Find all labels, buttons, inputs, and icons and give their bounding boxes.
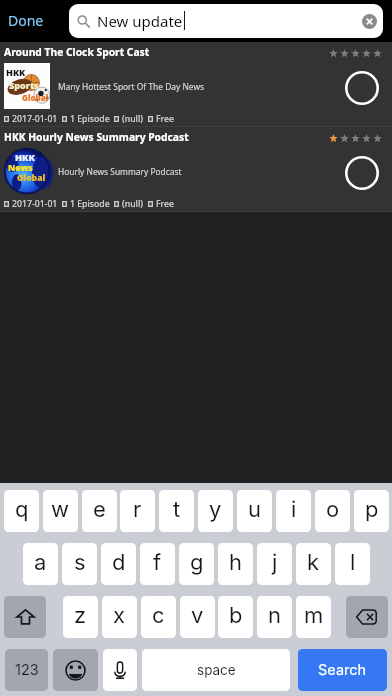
button[interactable]: j — [257, 543, 292, 585]
button[interactable]: h — [218, 543, 253, 585]
button[interactable]: p — [354, 490, 389, 532]
staticText: Hourly News Summary Podcast — [58, 166, 182, 177]
staticText: Around The Clock Sport Cast — [4, 45, 150, 59]
button[interactable]: b — [218, 596, 253, 638]
button[interactable]: x — [102, 596, 137, 638]
staticText: 1 Episode — [70, 198, 110, 210]
button[interactable]: d — [101, 543, 136, 585]
button[interactable]: q — [4, 490, 39, 532]
button[interactable]: z — [63, 596, 98, 638]
staticText: z — [74, 602, 87, 629]
staticText: space — [197, 662, 236, 678]
button[interactable]: u — [237, 490, 272, 532]
staticText: HKK Hourly News Summary Podcast — [4, 130, 189, 144]
button[interactable]: Backspace — [346, 596, 388, 638]
button[interactable]: y — [198, 490, 233, 532]
button[interactable]: Subscribe — [345, 156, 379, 190]
staticText: 1 Episode — [70, 113, 110, 125]
button[interactable]: Subscribe — [345, 71, 379, 105]
button[interactable]: l — [335, 543, 370, 585]
button[interactable]: s — [62, 543, 97, 585]
staticText: HKK — [6, 66, 26, 78]
button[interactable]: Shift — [4, 596, 46, 638]
button[interactable]: New update — [69, 4, 383, 38]
button[interactable]: Dictate — [103, 649, 137, 691]
staticText: Done — [8, 11, 44, 30]
button[interactable]: Numbers and symbols — [5, 649, 48, 691]
button[interactable]: w — [43, 490, 78, 532]
button[interactable]: Done — [2, 8, 50, 33]
staticText: j — [272, 549, 278, 576]
button[interactable]: o — [315, 490, 350, 532]
button[interactable]: v — [180, 596, 215, 638]
button[interactable]: space — [142, 649, 290, 691]
staticText: Search — [318, 661, 367, 679]
button[interactable]: k — [296, 543, 331, 585]
staticText: m — [304, 602, 324, 629]
staticText: w — [51, 496, 70, 523]
staticText: s — [74, 549, 86, 576]
staticText: News — [8, 162, 33, 174]
staticText: Free — [156, 113, 175, 125]
staticText: a — [34, 549, 47, 576]
staticText: u — [248, 496, 262, 523]
staticText: c — [152, 602, 165, 629]
staticText: t — [173, 496, 181, 523]
staticText: Many Hottest Sport Of The Day News — [58, 81, 205, 92]
staticText: o — [326, 496, 340, 523]
button[interactable]: f — [140, 543, 175, 585]
staticText: x — [113, 602, 126, 629]
staticText: 2017-01-01 — [12, 198, 58, 210]
staticText: b — [229, 602, 243, 629]
staticText: v — [191, 602, 204, 629]
staticText: (null) — [122, 198, 144, 210]
staticText: e — [93, 496, 106, 523]
staticText: New update — [97, 11, 183, 31]
button[interactable]: i — [276, 490, 311, 532]
staticText: 2017-01-01 — [12, 113, 58, 125]
button[interactable]: Search — [298, 649, 387, 691]
staticText: h — [229, 549, 243, 576]
staticText: l — [350, 549, 356, 576]
staticText: n — [268, 602, 281, 629]
staticText: i — [291, 496, 297, 523]
button[interactable]: g — [179, 543, 214, 585]
staticText: g — [190, 549, 204, 576]
staticText: 123 — [15, 661, 39, 679]
staticText: Sports — [9, 79, 39, 91]
staticText: p — [365, 496, 379, 523]
button[interactable]: t — [159, 490, 194, 532]
staticText: Global — [17, 172, 46, 184]
staticText: d — [112, 549, 126, 576]
staticText: r — [133, 496, 142, 523]
button[interactable]: Around The Clock Sport Cast — [0, 42, 392, 126]
staticText: q — [15, 496, 29, 523]
button[interactable]: Clear text — [362, 14, 377, 29]
staticText: y — [209, 496, 222, 523]
button[interactable]: m — [296, 596, 331, 638]
staticText: f — [153, 549, 162, 576]
button[interactable]: r — [120, 490, 155, 532]
button[interactable]: n — [257, 596, 292, 638]
staticText: k — [307, 549, 320, 576]
staticText: HKK — [15, 151, 35, 164]
button[interactable]: Emoji — [53, 649, 98, 691]
staticText: Free — [156, 198, 175, 210]
staticText: (null) — [122, 113, 144, 125]
button[interactable]: HKK Hourly News Summary Podcast — [0, 127, 392, 211]
button[interactable]: c — [141, 596, 176, 638]
button[interactable]: e — [82, 490, 117, 532]
staticText: Global — [22, 92, 49, 103]
button[interactable]: a — [23, 543, 58, 585]
